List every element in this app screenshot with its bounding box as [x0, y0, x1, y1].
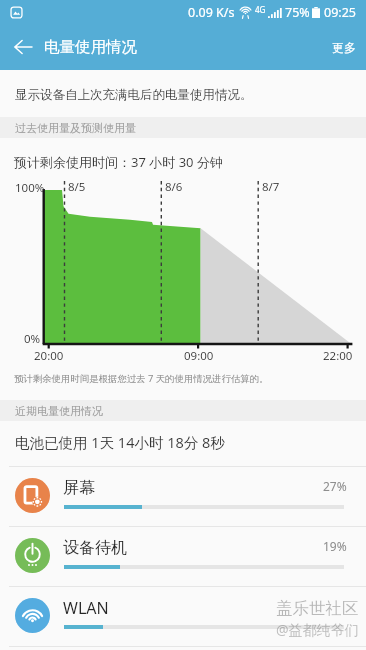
- button[interactable]: 更多: [314, 24, 366, 70]
- staticText: 设备待机: [63, 538, 127, 558]
- staticText: 75%: [285, 4, 310, 21]
- staticText: 0.09 K/s: [188, 4, 235, 21]
- staticText: 盖乐世社区: [276, 598, 359, 619]
- staticText: 09:25: [324, 4, 356, 21]
- staticText: 22:00: [323, 348, 353, 364]
- staticText: 27%: [323, 478, 347, 494]
- staticText: 100%: [15, 180, 45, 196]
- button[interactable]: WLAN: [0, 586, 366, 646]
- staticText: 过去使用量及预测使用量: [15, 121, 136, 135]
- staticText: 0%: [24, 331, 41, 347]
- staticText: WLAN: [63, 597, 109, 619]
- staticText: 4G: [255, 4, 266, 15]
- staticText: 8/7: [262, 179, 280, 195]
- staticText: 显示设备自上次充满电后的电量使用情况。: [15, 87, 253, 103]
- staticText: 电量使用情况: [44, 37, 137, 57]
- button[interactable]: 屏幕: [0, 466, 366, 526]
- staticText: 更多: [332, 40, 356, 55]
- staticText: 电池已使用 1天 14小时 18分 8秒: [15, 432, 225, 452]
- staticText: 预计剩余使用时间：37 小时 30 分钟: [14, 153, 223, 171]
- staticText: 09:00: [184, 348, 214, 364]
- staticText: 8/5: [68, 179, 86, 195]
- staticText: 20:00: [34, 348, 64, 364]
- staticText: 8/6: [165, 179, 183, 195]
- staticText: @益都纯爷们: [276, 620, 359, 639]
- button[interactable]: 设备待机: [0, 526, 366, 586]
- staticText: 屏幕: [63, 478, 95, 498]
- button[interactable]: Back: [0, 24, 46, 70]
- staticText: 预计剩余使用时间是根据您过去 7 天的使用情况进行估算的。: [14, 372, 269, 385]
- staticText: 19%: [323, 538, 347, 554]
- staticText: 近期电量使用情况: [15, 404, 103, 418]
